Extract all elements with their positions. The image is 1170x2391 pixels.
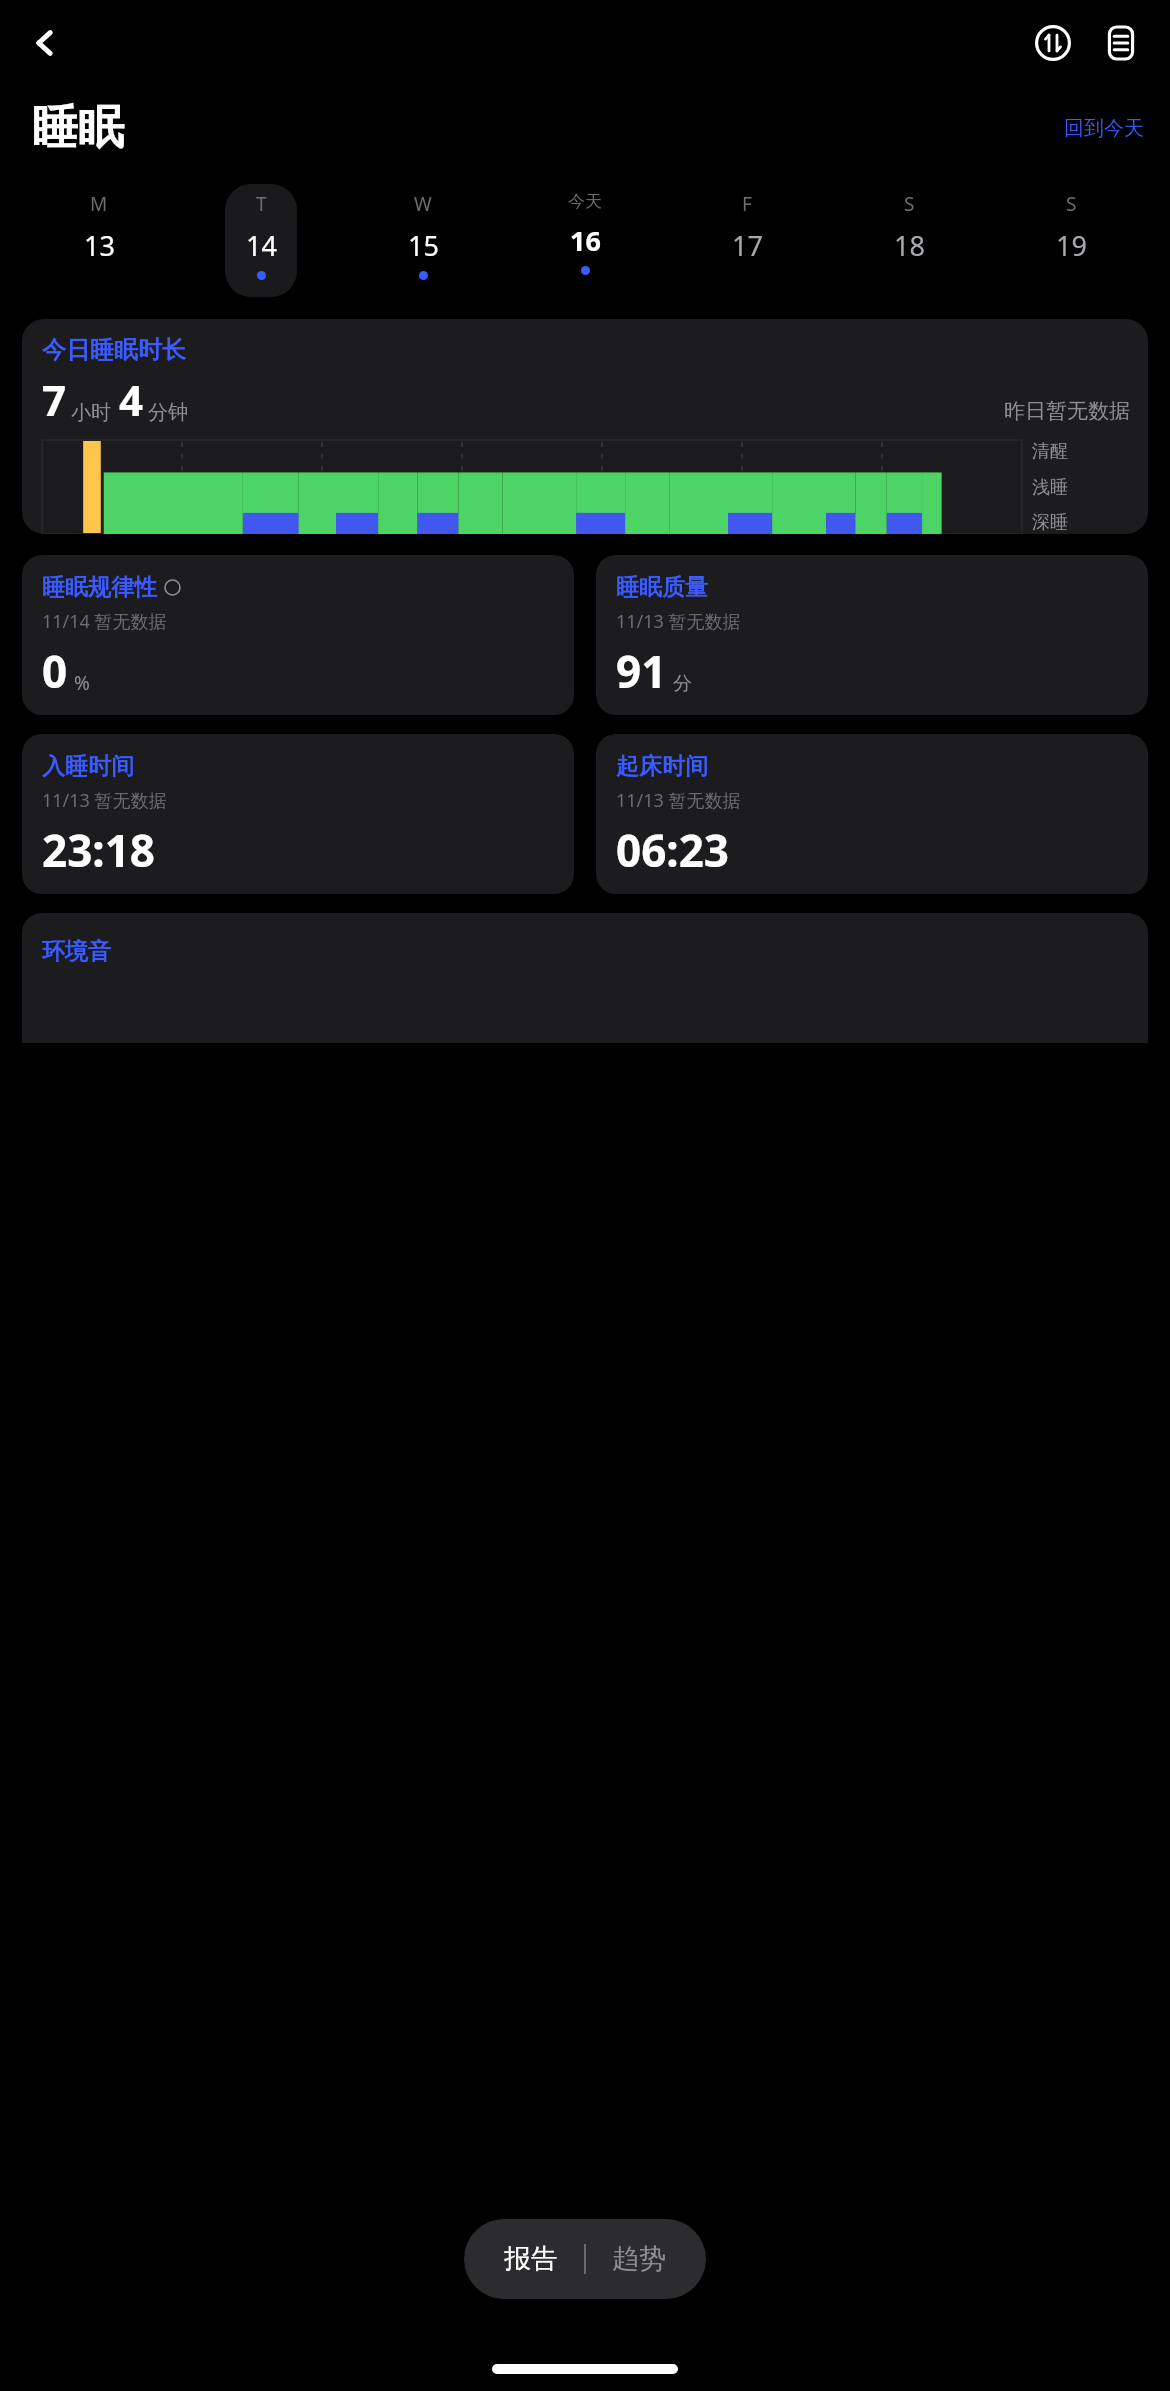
staticText: 11/13 暂无数据 <box>42 788 167 813</box>
button[interactable]: F <box>711 184 783 297</box>
staticText: 趋势 <box>612 2242 666 2276</box>
button[interactable]: Sync <box>1026 16 1080 70</box>
button[interactable]: 趋势 <box>586 2219 706 2299</box>
staticText: 深睡 <box>1032 511 1068 534</box>
button[interactable]: S <box>1035 184 1107 297</box>
staticText: 睡眠 <box>32 99 124 157</box>
button[interactable]: 报告 <box>464 2219 584 2299</box>
staticText: 18 <box>894 227 925 264</box>
staticText: 分钟 <box>148 400 188 425</box>
staticText: 小时 <box>71 400 111 425</box>
staticText: 0 <box>42 641 68 701</box>
button[interactable]: 回到今天 <box>1058 112 1150 145</box>
staticText: 23:18 <box>42 820 156 880</box>
staticText: 4 <box>119 371 144 428</box>
staticText: 17 <box>732 227 763 264</box>
button[interactable]: 睡眠质量 <box>596 555 1148 715</box>
staticText: 环境音 <box>42 937 111 966</box>
staticText: 19 <box>1056 227 1087 264</box>
staticText: 清醒 <box>1032 440 1068 463</box>
button[interactable]: Report <box>1094 16 1148 70</box>
staticText: 16 <box>570 222 601 259</box>
button[interactable]: M <box>63 184 135 297</box>
button[interactable]: 起床时间 <box>596 734 1148 894</box>
button[interactable]: S <box>873 184 945 297</box>
button[interactable]: 今天 <box>549 184 621 297</box>
staticText: 11/13 暂无数据 <box>616 788 741 813</box>
staticText: 分 <box>673 672 692 696</box>
staticText: 15 <box>408 227 439 264</box>
staticText: S <box>904 191 915 217</box>
staticText: 06:23 <box>616 820 730 880</box>
staticText: 昨日暂无数据 <box>1004 398 1130 424</box>
button[interactable]: T <box>225 184 297 297</box>
button[interactable]: 睡眠规律性 <box>22 555 574 715</box>
staticText: 起床时间 <box>616 752 708 781</box>
staticText: 睡眠规律性 <box>42 573 157 602</box>
staticText: 14 <box>246 227 277 264</box>
staticText: 11/13 暂无数据 <box>616 609 741 634</box>
staticText: 报告 <box>504 2242 558 2276</box>
button[interactable]: 今日睡眠时长 <box>22 319 1148 534</box>
staticText: 入睡时间 <box>42 752 134 781</box>
staticText: T <box>256 191 267 217</box>
staticText: M <box>90 191 108 217</box>
staticText: % <box>74 670 90 696</box>
button[interactable]: 入睡时间 <box>22 734 574 894</box>
staticText: F <box>742 191 752 217</box>
button[interactable]: Back <box>18 16 72 70</box>
staticText: 浅睡 <box>1032 476 1068 499</box>
staticText: W <box>414 191 432 217</box>
staticText: 今天 <box>568 191 602 212</box>
button[interactable]: W <box>387 184 459 297</box>
staticText: 回到今天 <box>1064 116 1144 141</box>
staticText: 7 <box>42 371 67 428</box>
button[interactable]: 环境音 <box>22 913 1148 1043</box>
staticText: 今日睡眠时长 <box>42 335 186 365</box>
staticText: 91 <box>616 641 667 701</box>
staticText: 11/14 暂无数据 <box>42 609 167 634</box>
staticText: S <box>1066 191 1077 217</box>
staticText: 13 <box>84 227 115 264</box>
staticText: 睡眠质量 <box>616 573 708 602</box>
